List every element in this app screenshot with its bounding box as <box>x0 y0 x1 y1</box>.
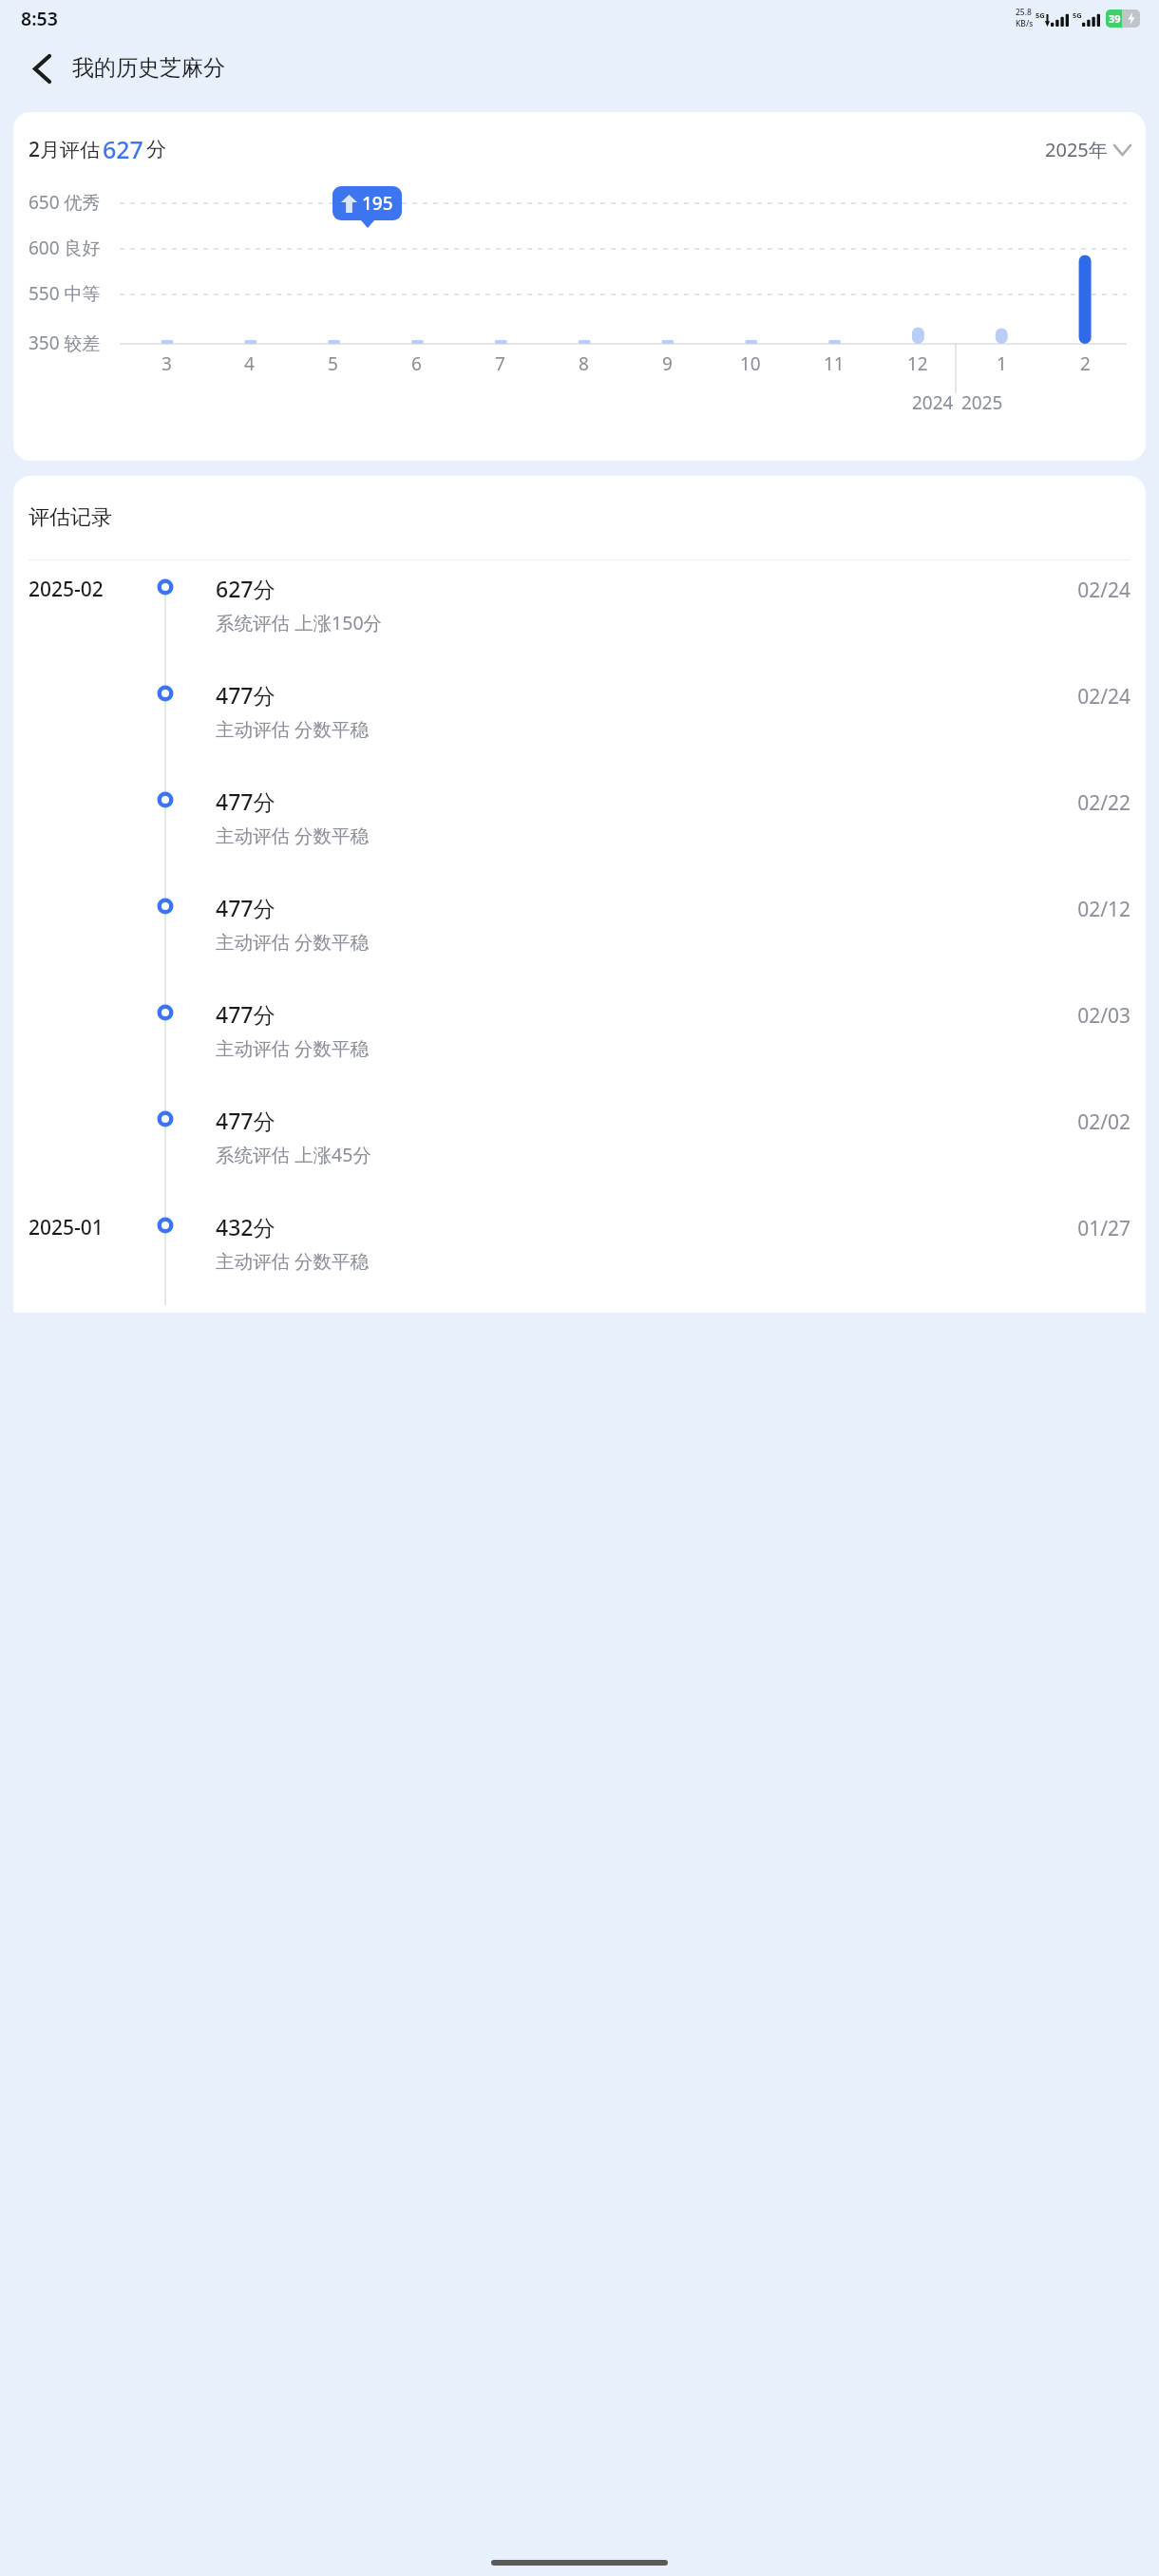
staticText: 主动评估 分数平稳 <box>216 823 370 848</box>
staticText: 2 <box>1080 351 1091 376</box>
staticText: 11 <box>824 351 845 376</box>
staticText: 627 <box>103 133 143 165</box>
staticText: 主动评估 分数平稳 <box>216 1035 370 1061</box>
staticText: 5G <box>1035 10 1045 20</box>
staticText: 我的历史芝麻分 <box>72 54 225 82</box>
button[interactable]: 477分 <box>13 880 1146 986</box>
staticText: 25.8 <box>1016 7 1032 18</box>
button[interactable]: 2025-01 <box>13 1199 1146 1305</box>
staticText: 627分 <box>216 574 275 603</box>
staticText: 477分 <box>216 680 275 710</box>
staticText: 2025-02 <box>28 576 104 603</box>
staticText: 2月评估 <box>28 136 101 163</box>
staticText: 02/02 <box>1077 1108 1130 1136</box>
staticText: 7 <box>495 351 505 376</box>
staticText: 02/24 <box>1077 577 1130 604</box>
staticText: 432分 <box>216 1212 275 1241</box>
staticText: 550 中等 <box>28 281 101 306</box>
staticText: 8:53 <box>21 6 58 31</box>
staticText: 39 <box>1109 11 1121 26</box>
button[interactable]: 2025年 <box>1045 137 1130 162</box>
staticText: 主动评估 分数平稳 <box>216 929 370 955</box>
staticText: 02/12 <box>1077 896 1130 923</box>
staticText: 477分 <box>216 1106 275 1135</box>
staticText: 4 <box>244 351 255 376</box>
staticText: 2025-01 <box>28 1214 104 1241</box>
staticText: 2024 <box>912 390 954 415</box>
button[interactable]: 477分 <box>13 667 1146 773</box>
staticText: 1 <box>997 351 1007 376</box>
staticText: 5G <box>1073 10 1082 20</box>
staticText: 9 <box>662 351 673 376</box>
staticText: 分 <box>146 137 166 161</box>
staticText: 01/27 <box>1077 1215 1130 1242</box>
button[interactable]: 2025-02 <box>13 560 1146 667</box>
staticText: 477分 <box>216 999 275 1029</box>
button[interactable]: 477分 <box>13 986 1146 1092</box>
staticText: 系统评估 上涨45分 <box>216 1142 371 1167</box>
staticText: 350 较差 <box>28 331 101 355</box>
staticText: 8 <box>579 351 589 376</box>
staticText: 477分 <box>216 893 275 922</box>
staticText: 10 <box>740 351 761 376</box>
staticText: 3 <box>161 351 172 376</box>
button[interactable]: 477分 <box>13 773 1146 880</box>
button[interactable]: Back <box>21 47 63 89</box>
staticText: KB/s <box>1016 18 1034 29</box>
staticText: 5 <box>328 351 338 376</box>
staticText: 评估记录 <box>28 504 112 531</box>
staticText: 02/22 <box>1077 789 1130 817</box>
button[interactable]: 477分 <box>13 1092 1146 1199</box>
staticText: 600 良好 <box>28 236 101 260</box>
staticText: 2025 <box>961 390 1003 415</box>
staticText: 02/24 <box>1077 683 1130 710</box>
staticText: 650 优秀 <box>28 190 101 215</box>
staticText: 02/03 <box>1077 1002 1130 1030</box>
staticText: 477分 <box>216 786 275 816</box>
staticText: 2025年 <box>1045 137 1108 162</box>
staticText: 主动评估 分数平稳 <box>216 716 370 742</box>
staticText: 主动评估 分数平稳 <box>216 1248 370 1274</box>
staticText: 6 <box>411 351 422 376</box>
staticText: 12 <box>907 351 928 376</box>
staticText: 系统评估 上涨150分 <box>216 610 383 635</box>
staticText: 195 <box>362 191 393 216</box>
